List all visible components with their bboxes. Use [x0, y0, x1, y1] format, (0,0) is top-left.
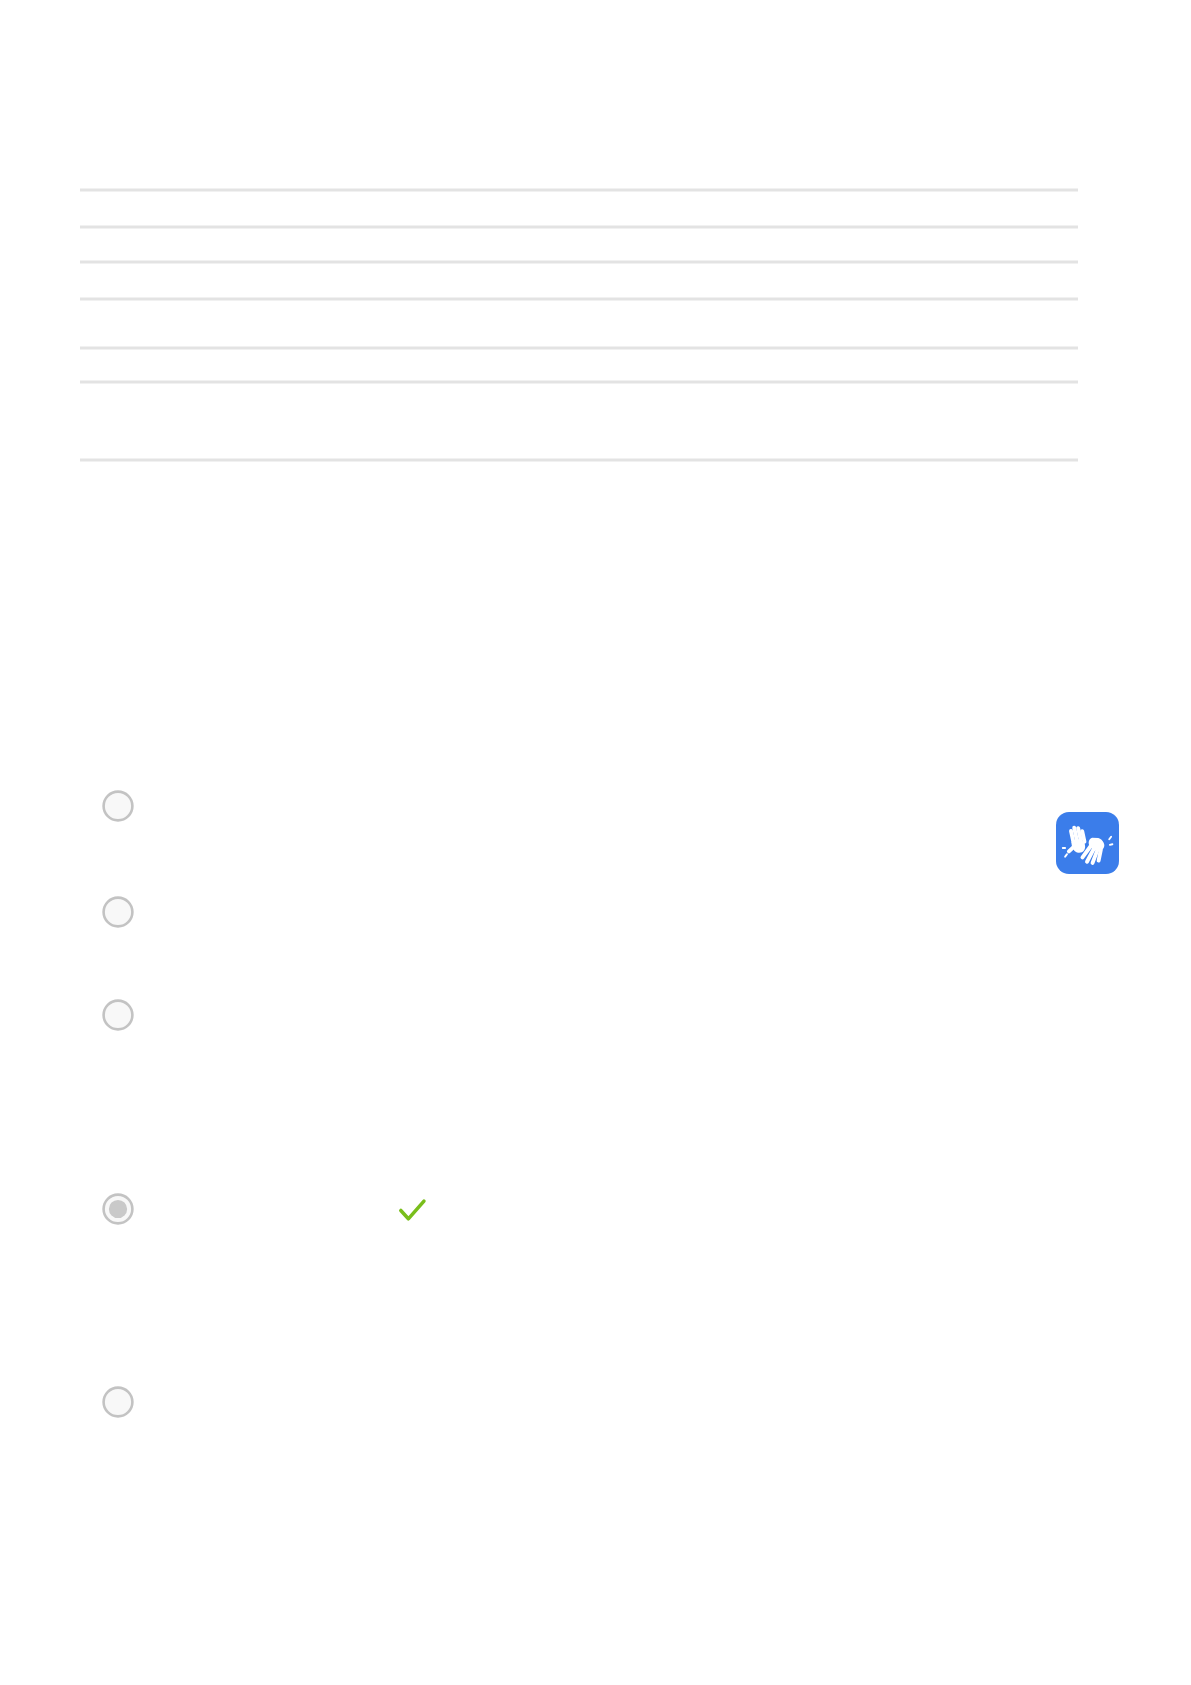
button[interactable]: Option 3	[102, 999, 134, 1031]
button[interactable]: Option 2	[102, 896, 134, 928]
other: Correct	[399, 1198, 425, 1224]
button[interactable]: Option 4, selected	[102, 1193, 134, 1225]
button[interactable]: Option 5	[102, 1386, 134, 1418]
button[interactable]: Option 1	[102, 790, 134, 822]
button[interactable]: Sign language interpreting	[1056, 812, 1119, 874]
